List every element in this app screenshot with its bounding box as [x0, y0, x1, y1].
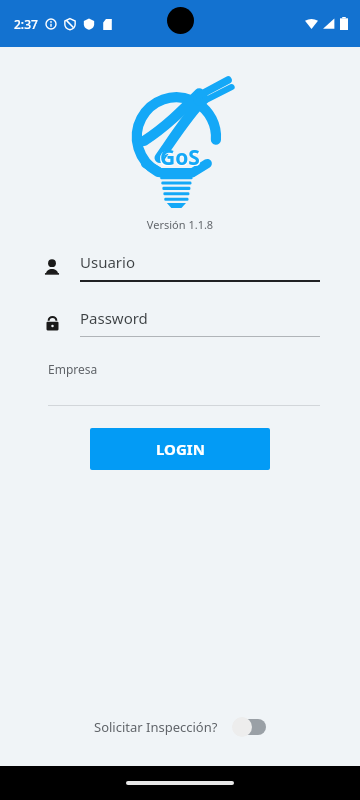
button[interactable]: Solicitar Inspección?	[94, 716, 266, 738]
other: User	[40, 255, 64, 279]
button[interactable]: User	[40, 252, 320, 282]
staticText: 2:37	[14, 16, 38, 32]
button[interactable]: Password	[40, 308, 320, 337]
staticText: Versión 1.1.8	[0, 217, 360, 232]
staticText: Usuario	[80, 252, 135, 272]
staticText: Empresa	[48, 361, 98, 377]
staticText: GoS	[160, 143, 200, 172]
button[interactable]: LOGIN	[90, 428, 270, 470]
other: Password	[40, 311, 64, 335]
staticText: LOGIN	[156, 439, 205, 459]
staticText: GoS	[159, 142, 201, 172]
staticText: Solicitar Inspección?	[94, 718, 218, 736]
button[interactable]: Empresa	[48, 361, 320, 406]
staticText: Password	[80, 308, 148, 328]
